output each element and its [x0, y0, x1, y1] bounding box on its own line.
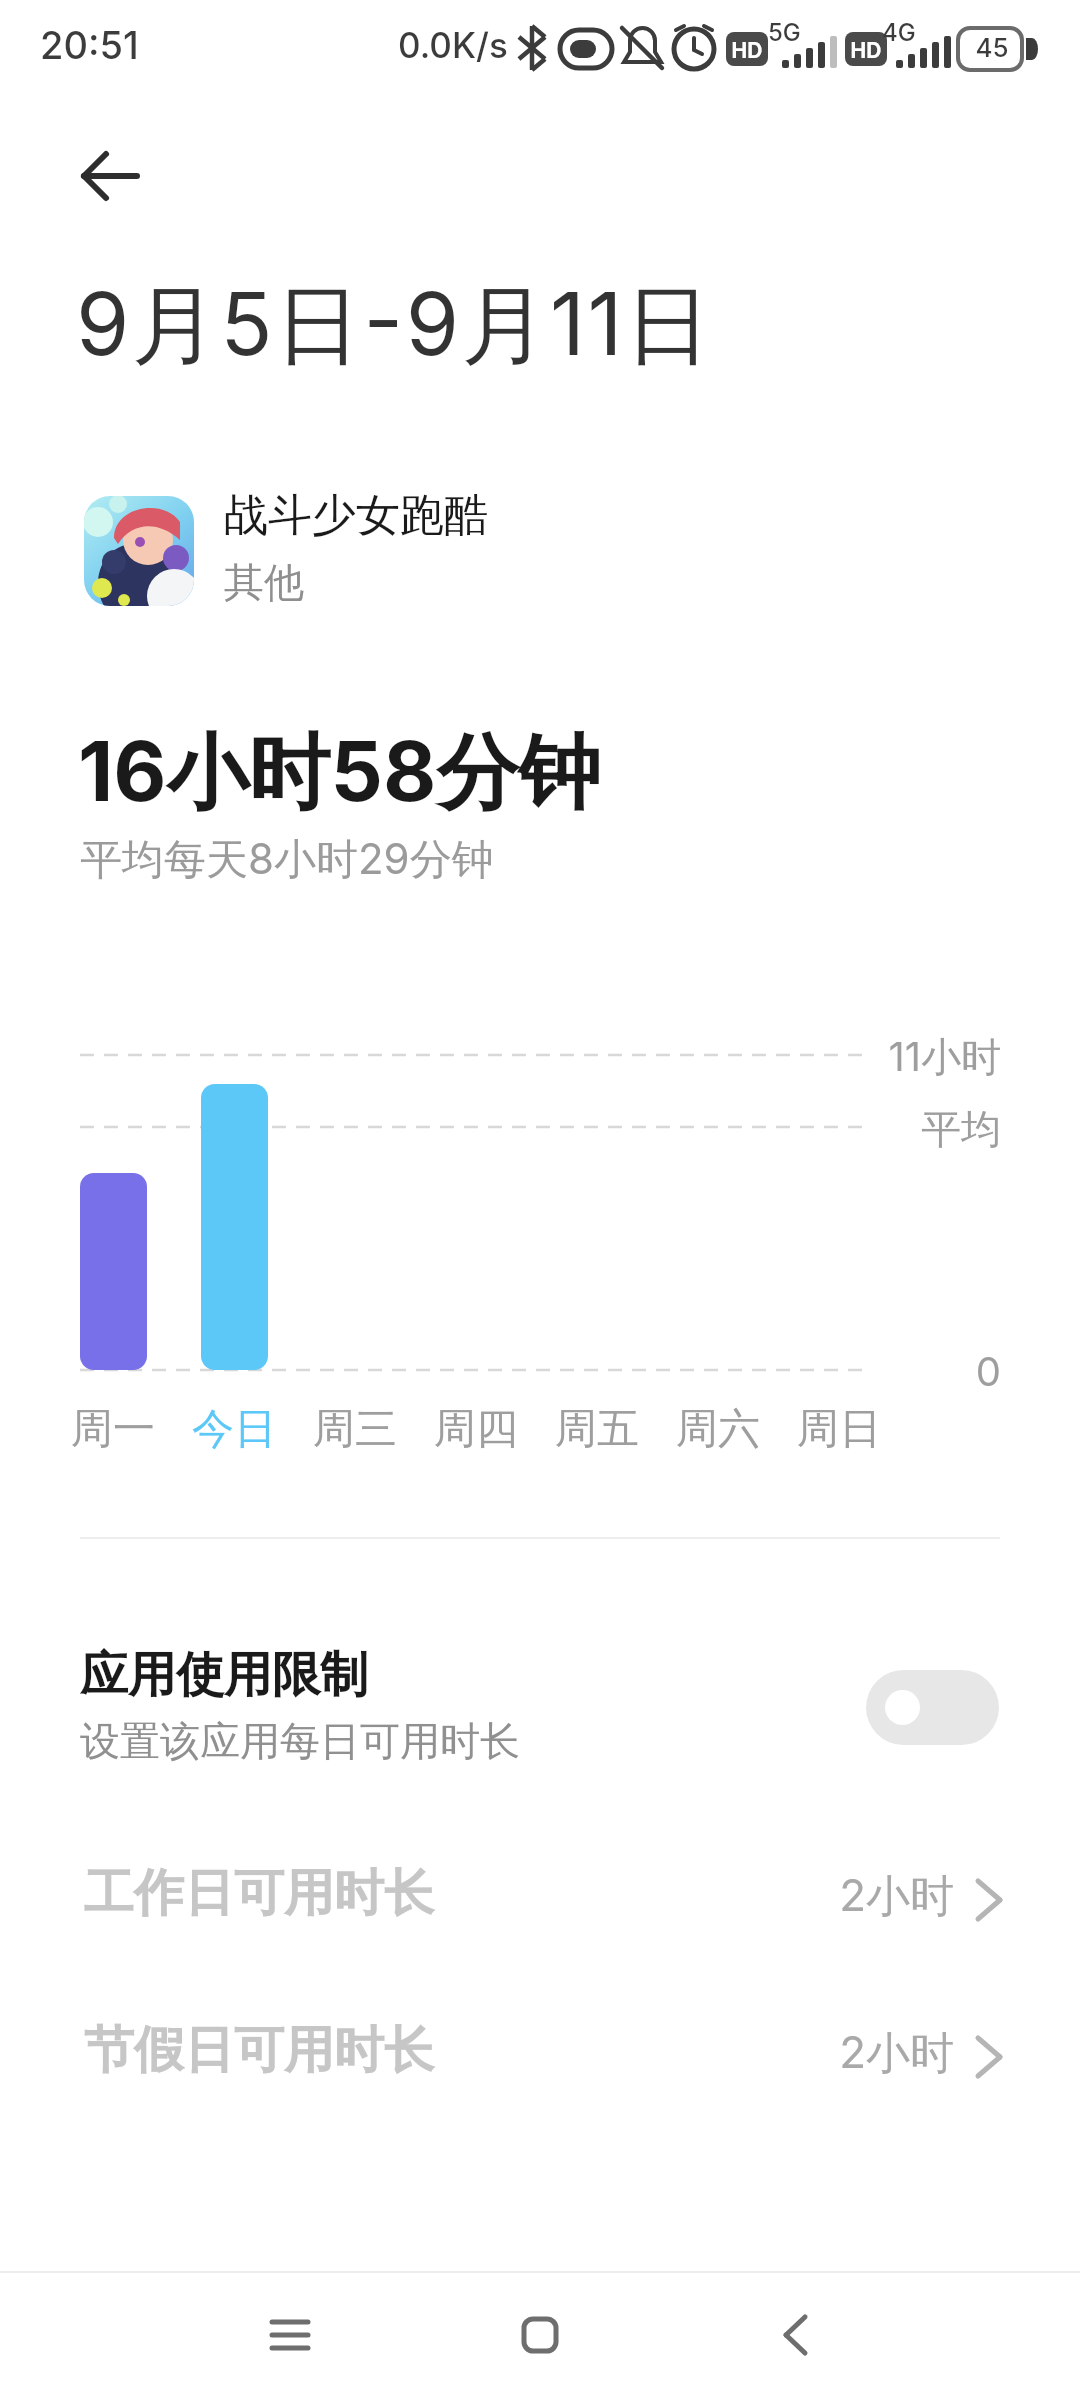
staticText: 2小时 [754, 2025, 954, 2081]
staticText: 45 [966, 32, 1018, 63]
staticText: 4G [882, 18, 916, 47]
button[interactable] [80, 152, 140, 200]
staticText: 应用使用限制 [80, 1645, 368, 1705]
staticText: 周六 [651, 1403, 785, 1456]
button[interactable] [80, 1997, 1004, 2117]
staticText: 今日 [167, 1403, 301, 1456]
staticText: 0 [801, 1347, 1001, 1395]
staticText: 周四 [409, 1403, 543, 1456]
button[interactable] [84, 496, 194, 606]
staticText: 周一 [46, 1403, 180, 1456]
staticText: 周三 [288, 1403, 422, 1456]
staticText: 平均 [801, 1104, 1001, 1154]
staticText: 5G [768, 18, 801, 47]
staticText: 其他 [224, 557, 304, 607]
staticText: HD [726, 38, 768, 63]
staticText: HD [845, 38, 887, 63]
staticText: 设置该应用每日可用时长 [80, 1716, 520, 1766]
staticText: 11小时 [801, 1032, 1001, 1083]
staticText: 周日 [772, 1403, 906, 1456]
staticText: 战斗少女跑酷 [224, 488, 488, 543]
button[interactable] [250, 2295, 330, 2375]
staticText: 节假日可用时长 [84, 2019, 434, 2082]
button[interactable] [500, 2295, 580, 2375]
staticText: 16小时58分钟 [78, 722, 601, 826]
staticText: 工作日可用时长 [84, 1862, 434, 1925]
staticText: 20:51 [40, 22, 139, 68]
button[interactable] [80, 1840, 1004, 1960]
button[interactable] [755, 2295, 835, 2375]
staticText: 平均每天8小时29分钟 [80, 833, 494, 886]
staticText: 9月5日-9月11日 [76, 272, 714, 381]
staticText: 周五 [530, 1403, 664, 1456]
button[interactable] [866, 1670, 999, 1745]
staticText: 2小时 [754, 1868, 954, 1924]
staticText: 0.0K/s [398, 24, 508, 66]
